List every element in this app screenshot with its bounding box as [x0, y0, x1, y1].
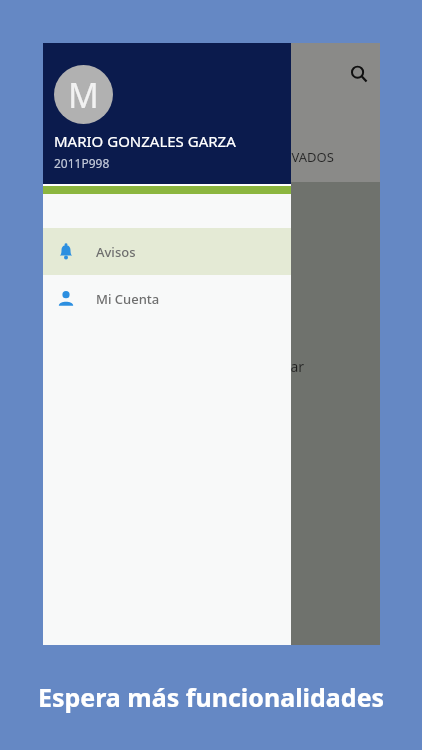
staticText: 2011P998 — [54, 155, 110, 171]
staticText: M — [68, 72, 99, 118]
staticText: MARIO GONZALES GARZA — [54, 131, 236, 151]
button[interactable]: Mi Cuenta — [43, 275, 291, 322]
staticText: IVADOS — [287, 148, 334, 166]
staticText: Mi Cuenta — [96, 290, 160, 308]
staticText: Avisos — [96, 243, 136, 261]
button[interactable]: Buscar — [343, 58, 375, 90]
staticText: rar — [285, 357, 305, 376]
button[interactable]: Avisos — [43, 228, 291, 275]
staticText: Espera más funcionalidades — [0, 680, 422, 714]
